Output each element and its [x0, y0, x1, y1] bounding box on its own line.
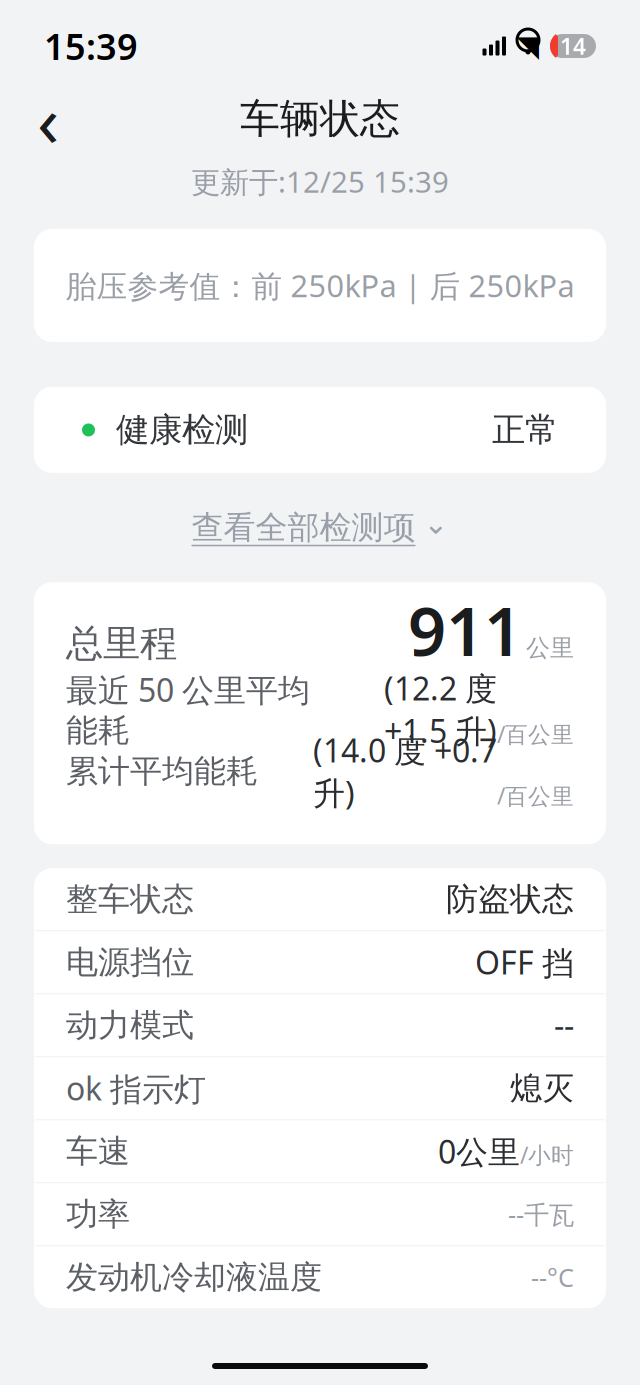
staticText: OFF 挡 [475, 941, 574, 984]
staticText: 14 [560, 31, 586, 61]
staticText: 防盗状态 [446, 880, 574, 919]
staticText: 车速 [66, 1132, 130, 1171]
staticText: 功率 [66, 1195, 130, 1234]
button[interactable]: 查看全部检测项 [179, 501, 460, 554]
staticText: 总里程 [66, 621, 177, 667]
staticText: /百公里 [497, 719, 574, 749]
staticText: 车辆状态 [240, 94, 400, 143]
staticText: 查看全部检测项 [191, 508, 415, 547]
staticText: 公里 [526, 633, 574, 663]
staticText: --°C [531, 1260, 574, 1294]
staticText: 最近 50 公里平均能耗 [66, 668, 310, 750]
staticText: 动力模式 [66, 1006, 194, 1045]
staticText: 健康检测 [116, 409, 248, 450]
staticText: ◥ [516, 29, 539, 63]
staticText: -- [554, 1004, 574, 1046]
staticText: 累计平均能耗 [66, 752, 258, 791]
staticText: 电源挡位 [66, 943, 194, 982]
staticText: --千瓦 [508, 1197, 574, 1231]
staticText: (12.2 度 +1.5 升) [384, 667, 497, 752]
staticText: (14.0 度 +0.7 升) [313, 729, 497, 814]
staticText: 熄灭 [510, 1069, 574, 1108]
button[interactable]: 返回 [18, 89, 78, 149]
staticText: 整车状态 [66, 880, 194, 919]
staticText: ok 指示灯 [66, 1067, 206, 1110]
staticText: 正常 [492, 409, 558, 450]
staticText: ⌄ [423, 507, 448, 540]
staticText: 更新于:12/25 15:39 [191, 162, 449, 201]
staticText: 0公里 [438, 1130, 520, 1172]
staticText: /百公里 [497, 781, 574, 811]
staticText: /小时 [520, 1140, 574, 1170]
staticText: 胎压参考值：前 250kPa | 后 250kPa [65, 265, 574, 306]
button[interactable]: 健康检测 [34, 387, 606, 473]
staticText: 15:39 [44, 22, 138, 70]
staticText: ‹ [37, 71, 59, 167]
staticText: 911 [408, 586, 522, 674]
staticText: 发动机冷却液温度 [66, 1258, 322, 1297]
